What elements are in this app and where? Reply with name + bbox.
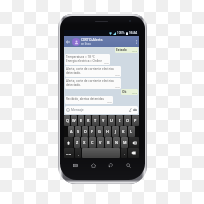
- staticText: N: [115, 140, 118, 145]
- button[interactable]: Alerta, corte de corriente electrica: [65, 78, 121, 89]
- staticText: R: [87, 118, 90, 123]
- button[interactable]: Recibido, alertas detenidas: [65, 96, 113, 104]
- button[interactable]: Temperatura = 18 °C: [65, 54, 110, 65]
- staticText: F: [91, 129, 94, 134]
- staticText: .: [124, 152, 125, 155]
- staticText: E: [80, 118, 83, 123]
- staticText: T: [94, 118, 97, 123]
- staticText: Temperatura = 18 °C: [66, 55, 95, 59]
- button[interactable]: Menu: [69, 159, 81, 171]
- button[interactable]: Back: [64, 36, 139, 47]
- staticText: W: [72, 118, 76, 123]
- button[interactable]: N: [113, 137, 120, 148]
- staticText: Estado: [116, 48, 127, 52]
- staticText: S: [77, 129, 80, 134]
- button[interactable]: ?123: [64, 148, 74, 158]
- staticText: G: [98, 129, 101, 134]
- staticText: X: [83, 140, 86, 145]
- staticText: Recibido, alertas detenidas: [66, 97, 104, 101]
- button[interactable]: E: [78, 115, 84, 126]
- button[interactable]: back: [129, 137, 139, 148]
- button[interactable]: C: [89, 137, 96, 148]
- button[interactable]: V: [97, 137, 104, 148]
- button[interactable]: M: [121, 137, 128, 148]
- button[interactable]: J: [112, 126, 119, 137]
- button[interactable]: Ok: [121, 89, 138, 95]
- staticText: Ok: [122, 90, 127, 94]
- staticText: Q: [66, 118, 69, 123]
- button[interactable]: More options: [133, 36, 139, 47]
- button[interactable]: W: [71, 115, 77, 126]
- staticText: Alerta, corte de corriente electrica: [66, 79, 114, 83]
- staticText: 16:3: [115, 86, 120, 89]
- staticText: H: [106, 129, 109, 134]
- staticText: A: [70, 129, 73, 134]
- staticText: L: [130, 129, 133, 134]
- button[interactable]: U: [108, 115, 115, 126]
- staticText: P: [134, 118, 137, 123]
- button[interactable]: Q: [64, 115, 70, 126]
- staticText: detectado.: [66, 71, 81, 75]
- button[interactable]: Search: [122, 159, 134, 171]
- button[interactable]: K: [120, 126, 127, 137]
- button[interactable]: A: [68, 126, 74, 137]
- button[interactable]: Back: [64, 36, 72, 47]
- button[interactable]: Mensaje: [65, 106, 138, 114]
- button[interactable]: Alerta, corte de corriente electrica: [65, 66, 121, 77]
- staticText: I: [119, 118, 121, 123]
- staticText: Energia electrica = Online: [66, 59, 102, 63]
- staticText: 16:3: [132, 49, 137, 52]
- staticText: 16:3: [132, 91, 137, 94]
- button[interactable]: Back: [104, 159, 116, 171]
- staticText: M: [123, 140, 127, 145]
- button[interactable]: [82, 148, 120, 158]
- button[interactable]: H: [104, 126, 111, 137]
- button[interactable]: P: [132, 115, 139, 126]
- staticText: B: [107, 140, 110, 145]
- button[interactable]: Z: [74, 137, 80, 148]
- button[interactable]: .: [121, 148, 127, 158]
- staticText: Z: [76, 140, 79, 145]
- button[interactable]: Y: [100, 115, 107, 126]
- button[interactable]: Estado: [115, 47, 138, 53]
- staticText: 100%: [117, 31, 125, 35]
- staticText: C: [91, 140, 94, 145]
- button[interactable]: enter: [128, 148, 139, 158]
- button[interactable]: B: [105, 137, 112, 148]
- staticText: detectado.: [66, 83, 81, 87]
- button[interactable]: Home: [87, 159, 99, 171]
- staticText: D: [84, 129, 87, 134]
- staticText: O: [126, 118, 129, 123]
- button[interactable]: I: [116, 115, 123, 126]
- button[interactable]: X: [81, 137, 88, 148]
- button[interactable]: F: [89, 126, 95, 137]
- staticText: Y: [102, 118, 105, 123]
- button[interactable]: ,: [75, 148, 81, 158]
- staticText: Alerta, corte de corriente electrica: [66, 67, 114, 71]
- staticText: en línea: [81, 42, 91, 46]
- staticText: Mensaje: [71, 108, 84, 112]
- button[interactable]: O: [124, 115, 131, 126]
- staticText: 16:3: [107, 101, 112, 104]
- staticText: J: [115, 129, 117, 134]
- staticText: ?123: [66, 152, 72, 155]
- button[interactable]: shift: [64, 137, 73, 148]
- button[interactable]: L: [128, 126, 135, 137]
- button[interactable]: S: [75, 126, 81, 137]
- staticText: U: [110, 118, 113, 123]
- staticText: CIRTO-Alerts: [81, 37, 103, 42]
- staticText: V: [99, 140, 102, 145]
- staticText: 16:3: [115, 74, 120, 77]
- staticText: 16:34: [129, 31, 138, 35]
- staticText: 16:3: [104, 62, 109, 65]
- button[interactable]: G: [96, 126, 103, 137]
- staticText: K: [122, 129, 125, 134]
- button[interactable]: R: [85, 115, 91, 126]
- button[interactable]: T: [92, 115, 99, 126]
- button[interactable]: D: [82, 126, 88, 137]
